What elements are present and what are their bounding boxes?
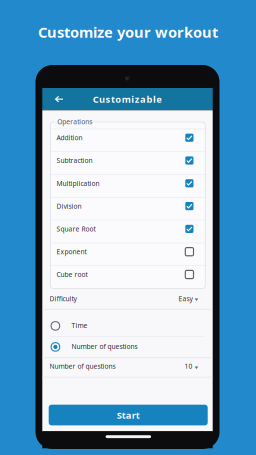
staticText: Cube root <box>56 270 87 279</box>
staticText: Multiplication <box>56 179 99 188</box>
button[interactable]: Back <box>48 88 70 110</box>
button[interactable]: Number of questions <box>42 336 213 357</box>
staticText: Difficulty <box>49 294 76 303</box>
staticText: Start <box>117 409 140 421</box>
staticText: Operations <box>57 117 92 126</box>
button[interactable]: Cube root <box>50 265 205 288</box>
staticText: Division <box>56 202 81 211</box>
button[interactable]: Start <box>49 405 208 425</box>
staticText: Square Root <box>56 224 95 233</box>
staticText: Easy <box>178 294 192 303</box>
staticText: Number of questions <box>72 342 138 351</box>
button[interactable]: Difficulty <box>42 290 213 309</box>
button[interactable]: Division <box>50 197 205 220</box>
staticText: Number of questions <box>49 362 115 371</box>
staticText: Subtraction <box>56 156 92 165</box>
staticText: Addition <box>56 133 82 142</box>
button[interactable]: Multiplication <box>50 174 205 197</box>
staticText: 10 <box>184 362 192 371</box>
staticText: Exponent <box>56 247 86 256</box>
staticText: Time <box>72 321 88 330</box>
staticText: Customize your workout <box>38 22 218 42</box>
button[interactable]: Square Root <box>50 220 205 243</box>
button[interactable]: Time <box>42 315 213 336</box>
staticText: Customizable <box>93 93 162 105</box>
button[interactable]: Number of questions <box>42 358 213 377</box>
button[interactable]: Addition <box>50 129 205 151</box>
button[interactable]: Subtraction <box>50 151 205 174</box>
button[interactable]: Exponent <box>50 243 205 265</box>
